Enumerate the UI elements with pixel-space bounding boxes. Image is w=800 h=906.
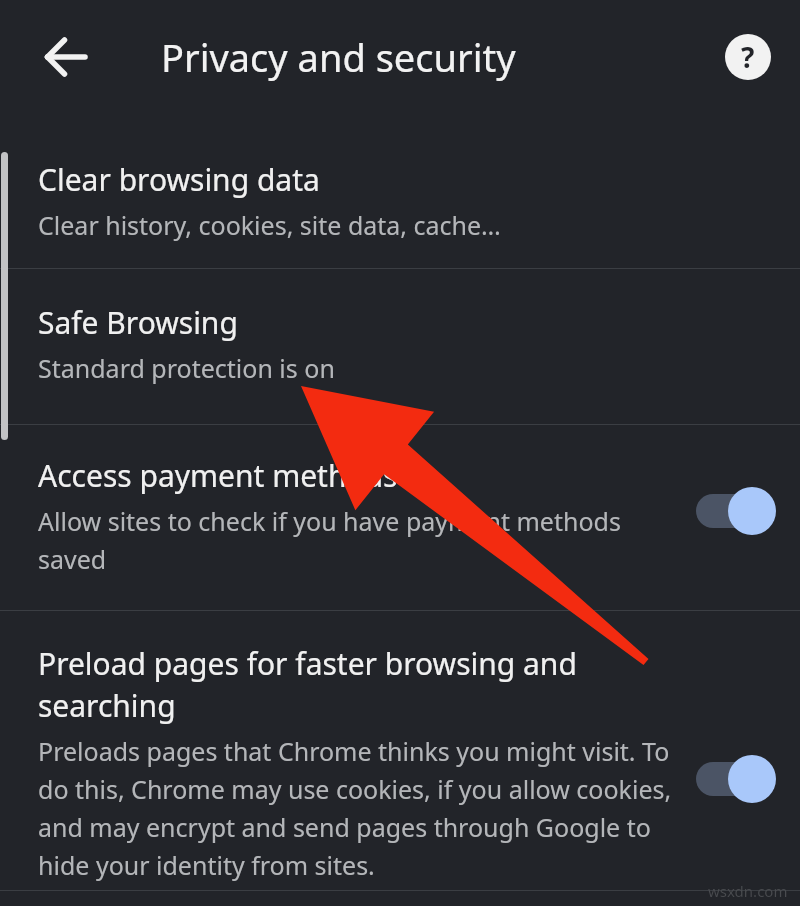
button[interactable]: Toggle Access payment methods: [696, 487, 776, 535]
button[interactable]: Preload pages for faster browsing and se…: [0, 611, 800, 890]
staticText: Allow sites to check if you have payment…: [38, 504, 672, 576]
staticText: Safe Browsing: [38, 302, 238, 343]
staticText: Clear history, cookies, site data, cache…: [38, 208, 501, 242]
staticText: Standard protection is on: [38, 351, 335, 385]
button[interactable]: Clear browsing data: [0, 143, 800, 268]
staticText: ?: [741, 38, 755, 76]
button[interactable]: Help: [720, 29, 776, 85]
button[interactable]: Safe Browsing: [0, 269, 800, 424]
button[interactable]: Access payment methods: [0, 425, 800, 610]
staticText: Clear browsing data: [38, 159, 320, 200]
staticText: Access payment methods: [38, 455, 398, 496]
staticText: Preloads pages that Chrome thinks you mi…: [38, 734, 672, 882]
button[interactable]: Back: [38, 29, 94, 85]
button[interactable]: Toggle Preload pages: [696, 755, 776, 803]
staticText: Privacy and security: [161, 31, 516, 83]
staticText: Preload pages for faster browsing and se…: [38, 643, 672, 726]
staticText: wsxdn.com: [708, 881, 788, 901]
